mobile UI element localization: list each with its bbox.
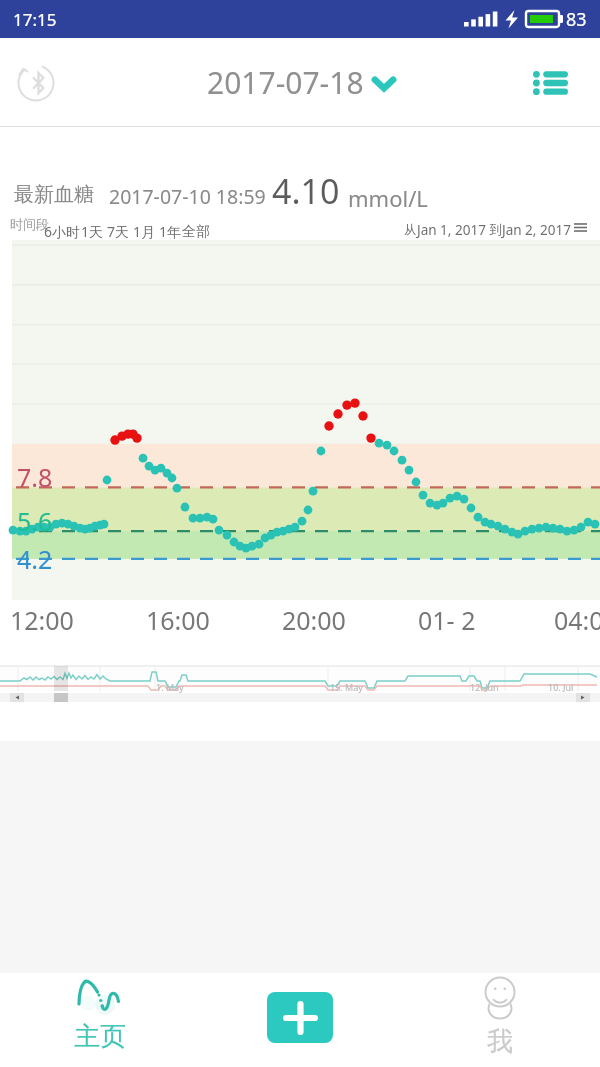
button[interactable]: 6小时 [44, 222, 81, 241]
staticText: 4.2 [17, 542, 53, 576]
staticText: 04:0 [554, 603, 600, 637]
staticText: 我 [487, 1025, 513, 1058]
staticText: 最新血糖 [14, 182, 94, 207]
button[interactable]: 1月 [133, 222, 159, 241]
button[interactable]: Bluetooth sync [6, 53, 66, 113]
button[interactable]: Date range selector [0, 660, 600, 708]
button[interactable]: Add reading [267, 992, 333, 1043]
staticText: 83 [566, 7, 587, 32]
button[interactable]: 1年 [159, 222, 182, 241]
staticText: 20:00 [282, 603, 346, 637]
staticText: 主页 [74, 1020, 126, 1053]
staticText: 从 [404, 222, 417, 238]
button[interactable]: 全部 [182, 223, 210, 241]
button[interactable]: Jan 2, 2017 [502, 221, 571, 239]
staticText: 时间段 [10, 216, 49, 232]
button[interactable]: 我 [400, 973, 600, 1067]
button[interactable]: List view [522, 55, 578, 111]
staticText: 10. Jul [548, 681, 574, 693]
staticText: 5.6 [17, 504, 53, 538]
button[interactable]: 7天 [107, 222, 133, 241]
staticText: 15. May [330, 681, 363, 693]
button[interactable]: 1天 [81, 222, 107, 241]
button[interactable]: 主页 [0, 973, 200, 1067]
staticText: 12:00 [10, 603, 74, 637]
staticText: 到 [486, 221, 502, 238]
button[interactable]: Chart menu [574, 222, 587, 233]
button[interactable]: Jan 1, 2017 [417, 221, 486, 239]
staticText: 1. May [156, 681, 184, 693]
staticText: 01- 2 [418, 603, 476, 637]
staticText: 7.8 [17, 460, 53, 494]
staticText: 2017-07-10 18:59 [109, 183, 266, 210]
button[interactable]: 2017-07-18 [207, 62, 394, 103]
staticText: mmol/L [348, 183, 428, 213]
staticText: 17:15 [13, 8, 57, 31]
staticText: 4.10 [272, 168, 340, 214]
staticText: 12. Jun [470, 681, 499, 693]
staticText: 16:00 [146, 603, 210, 637]
staticText: 2017-07-18 [207, 62, 364, 103]
